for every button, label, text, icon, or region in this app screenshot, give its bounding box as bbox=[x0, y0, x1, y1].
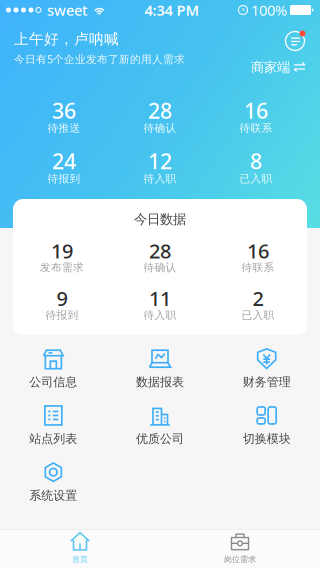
staticText: 发布需求 bbox=[40, 261, 84, 274]
staticText: 待确认 bbox=[143, 122, 176, 135]
button[interactable]: 消息 bbox=[284, 30, 306, 52]
button[interactable]: 首页 bbox=[0, 527, 160, 568]
button[interactable]: 公司信息 bbox=[0, 341, 107, 397]
staticText: 站点列表 bbox=[29, 431, 77, 446]
staticText: 商家端 bbox=[251, 59, 290, 75]
staticText: 已入职 bbox=[241, 309, 274, 322]
staticText: 16 bbox=[244, 96, 268, 125]
staticText: 19 bbox=[51, 237, 73, 264]
button[interactable]: 财务管理 bbox=[213, 341, 320, 397]
staticText: 11 bbox=[149, 285, 171, 312]
button[interactable]: 系统设置 bbox=[0, 454, 107, 511]
staticText: 9 bbox=[56, 285, 67, 312]
staticText: 上午好，卢呐喊 bbox=[14, 30, 119, 48]
staticText: 100% bbox=[251, 0, 287, 20]
staticText: 公司信息 bbox=[29, 375, 77, 389]
staticText: 待推送 bbox=[47, 122, 80, 135]
button[interactable]: 岗位需求 bbox=[160, 527, 320, 568]
staticText: 已入职 bbox=[239, 172, 272, 185]
staticText: 24 bbox=[52, 147, 76, 175]
staticText: 28 bbox=[149, 237, 171, 264]
staticText: 财务管理 bbox=[243, 375, 291, 389]
staticText: 待联系 bbox=[239, 122, 272, 135]
staticText: 16 bbox=[247, 237, 269, 264]
staticText: 待报到 bbox=[47, 172, 80, 185]
staticText: 2 bbox=[252, 285, 263, 312]
button[interactable]: 优质公司 bbox=[107, 397, 213, 454]
staticText: 8 bbox=[250, 147, 262, 175]
staticText: 岗位需求 bbox=[224, 554, 256, 564]
staticText: 待确认 bbox=[143, 261, 176, 274]
staticText: 首页 bbox=[72, 554, 88, 564]
staticText: 系统设置 bbox=[29, 488, 77, 503]
staticText: 今日有5个企业发布了新的用人需求 bbox=[14, 52, 185, 66]
button[interactable]: 数据报表 bbox=[107, 341, 213, 397]
staticText: 待联系 bbox=[241, 261, 274, 274]
staticText: 待入职 bbox=[143, 309, 176, 322]
staticText: 4:34 PM bbox=[144, 0, 199, 20]
button[interactable]: 商家端 bbox=[251, 59, 306, 75]
staticText: 12 bbox=[148, 147, 172, 175]
staticText: 待报到 bbox=[45, 309, 78, 322]
staticText: 28 bbox=[148, 96, 172, 125]
staticText: 待入职 bbox=[143, 172, 176, 185]
staticText: 数据报表 bbox=[136, 375, 184, 389]
button[interactable]: 切换模块 bbox=[213, 397, 320, 454]
staticText: 切换模块 bbox=[243, 431, 291, 446]
staticText: 今日数据 bbox=[134, 211, 186, 227]
staticText: 36 bbox=[52, 96, 76, 125]
staticText: sweet bbox=[47, 0, 88, 20]
staticText: 优质公司 bbox=[136, 431, 184, 446]
button[interactable]: 站点列表 bbox=[0, 397, 107, 454]
